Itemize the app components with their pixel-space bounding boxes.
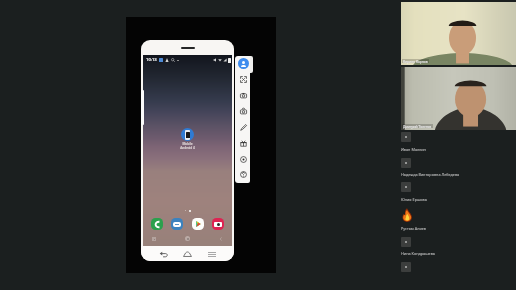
button[interactable]: Sticker [401,262,411,272]
staticText: Нина Кондрашева [401,251,435,256]
button[interactable]: Sticker [401,182,411,192]
staticText: Кирилл Карпов [403,59,428,63]
button[interactable]: Back [158,249,169,260]
button[interactable]: Fullscreen [239,75,247,83]
button[interactable]: Screenshot [239,91,247,99]
button[interactable]: Gift [239,139,247,147]
button[interactable]: Play Store [192,218,204,230]
button[interactable]: Account [238,58,249,69]
staticText: Надежда Викторовна Лебедева [401,172,460,177]
button[interactable]: Sticker [401,237,411,247]
button[interactable]: Home [182,249,193,260]
button[interactable]: Sticker [401,132,411,142]
button[interactable]: Fire reaction [400,207,413,222]
button[interactable]: Draw [239,123,247,131]
button[interactable]: Secure camera [239,107,247,115]
button[interactable]: Phone [151,218,163,230]
staticText: Дмитрий Толстов [403,124,432,128]
button[interactable]: Дмитрий Толстов [401,67,516,130]
staticText: Иван Малкин [401,147,426,152]
button[interactable]: Camera [212,218,224,230]
button[interactable]: Help [239,170,247,178]
button[interactable]: Кирилл Карпов [401,2,516,65]
staticText: Юлия Ершова [401,197,427,202]
staticText: 10:13 [146,57,157,63]
button[interactable]: Messages [171,218,183,230]
staticText: Рустам Алиев [401,226,427,231]
staticText: Mobile Android 4 [180,142,195,150]
button[interactable]: Record [239,155,247,163]
button[interactable]: Mobile Android app [181,128,194,141]
button[interactable]: Sticker [401,158,411,168]
button[interactable]: Recents [206,249,217,260]
